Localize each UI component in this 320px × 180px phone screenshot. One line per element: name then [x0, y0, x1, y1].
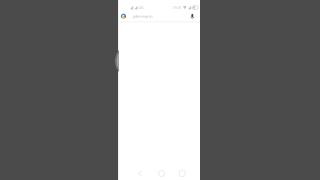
button[interactable]: john marin [118, 14, 200, 19]
staticText: john marin [133, 14, 152, 19]
button[interactable]: Recent apps [179, 171, 185, 176]
staticText: 4G [139, 5, 144, 10]
button[interactable]: Home [158, 170, 164, 176]
button[interactable]: Back [137, 170, 143, 177]
staticText: 19:41 [173, 5, 182, 10]
